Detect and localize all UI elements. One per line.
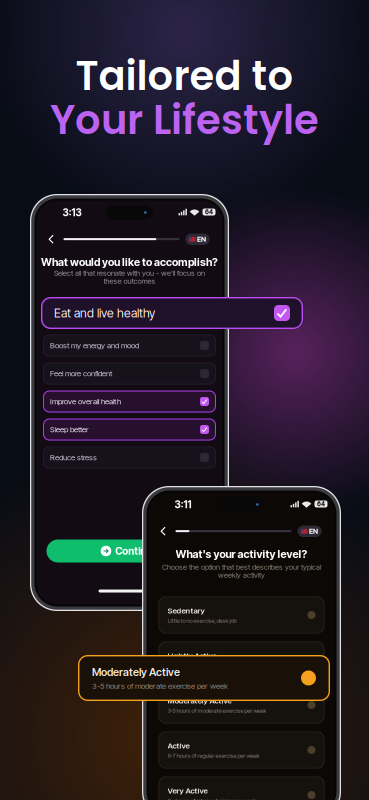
button[interactable]: Reduce stress bbox=[43, 446, 216, 468]
staticText: Your Lifestyle bbox=[50, 92, 319, 148]
button[interactable]: Back bbox=[45, 231, 57, 247]
button[interactable]: Lightly Active bbox=[158, 641, 324, 678]
staticText: Improve overall health bbox=[50, 397, 121, 406]
staticText: Moderately Active bbox=[92, 665, 180, 679]
button[interactable]: Feel more confident bbox=[43, 362, 216, 384]
staticText: 3-5 hours of moderate exercise per week bbox=[167, 707, 266, 714]
staticText: Choose the option that best describes yo… bbox=[162, 562, 321, 571]
button[interactable]: Moderately Active bbox=[78, 655, 330, 701]
staticText: Boost my energy and mood bbox=[50, 341, 139, 350]
staticText: Sleep better bbox=[50, 425, 89, 434]
staticText: 64 bbox=[317, 500, 325, 508]
button[interactable]: Very Active bbox=[158, 776, 324, 800]
button[interactable]: Back bbox=[157, 523, 169, 539]
button[interactable]: Continue bbox=[46, 539, 212, 562]
button[interactable]: Eat and live healthy bbox=[41, 297, 303, 329]
staticText: EN bbox=[309, 527, 318, 536]
staticText: 6-7 hours of regular exercise per week bbox=[167, 752, 259, 759]
staticText: Lightly Active bbox=[167, 651, 216, 660]
staticText: Moderately Active bbox=[167, 696, 231, 705]
staticText: these outcomes bbox=[103, 276, 155, 285]
staticText: Little to no exercise, desk job bbox=[167, 617, 236, 624]
staticText: Select all that resonate with you - we'l… bbox=[54, 268, 205, 277]
staticText: What's your activity level? bbox=[175, 547, 307, 561]
staticText: 8+ hours of intense training per week bbox=[167, 797, 256, 800]
button[interactable]: Moderately Active bbox=[158, 686, 324, 723]
button[interactable]: EN bbox=[297, 525, 321, 537]
staticText: Very Active bbox=[167, 786, 207, 795]
button[interactable]: Sleep better bbox=[43, 418, 216, 440]
button[interactable]: EN bbox=[185, 233, 209, 245]
staticText: Reduce stress bbox=[50, 453, 97, 462]
button[interactable]: Sedentary bbox=[158, 596, 324, 633]
staticText: Continue bbox=[115, 545, 158, 557]
staticText: Eat and live healthy bbox=[54, 306, 155, 320]
staticText: weekly activity bbox=[218, 570, 265, 579]
staticText: What would you like to accomplish? bbox=[41, 255, 218, 269]
staticText: 3:13 bbox=[62, 206, 81, 219]
button[interactable]: Active bbox=[158, 731, 324, 768]
staticText: 3-5 hours of moderate exercise per week bbox=[92, 681, 228, 690]
staticText: EN bbox=[197, 235, 206, 244]
button[interactable]: Improve overall health bbox=[43, 390, 216, 412]
staticText: Active bbox=[167, 741, 189, 750]
button[interactable]: Boost my energy and mood bbox=[43, 334, 216, 356]
staticText: 3:11 bbox=[174, 498, 191, 511]
staticText: 64 bbox=[205, 208, 213, 216]
staticText: Sedentary bbox=[167, 606, 204, 615]
staticText: Feel more confident bbox=[50, 369, 112, 378]
staticText: Tailored to bbox=[75, 48, 293, 104]
